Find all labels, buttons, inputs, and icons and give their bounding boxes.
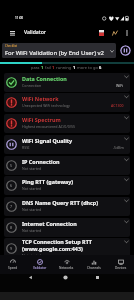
staticText: 6 bbox=[10, 183, 13, 188]
staticText: WiFi bbox=[116, 83, 124, 88]
staticText: TCP Connection Setup RTT bbox=[22, 238, 92, 245]
button[interactable]: 6 bbox=[4, 176, 130, 195]
staticText: WiFi Signal Quality bbox=[22, 137, 73, 144]
button[interactable]: 5 bbox=[4, 156, 130, 175]
staticText: IP Connection bbox=[22, 158, 60, 165]
staticText: Validator bbox=[33, 266, 47, 270]
button[interactable]: Pause validation bbox=[120, 45, 131, 56]
staticText: 1 bbox=[41, 65, 44, 70]
staticText: -5dBm bbox=[113, 145, 124, 150]
button[interactable]: Recent apps bbox=[92, 274, 102, 280]
button[interactable]: Show chart bbox=[108, 26, 121, 39]
staticText: 8 bbox=[10, 225, 13, 230]
button[interactable]: 9 bbox=[4, 238, 130, 259]
staticText: DNS Name Query RTT (dhcp) bbox=[22, 199, 99, 206]
staticText: fail bbox=[44, 65, 52, 70]
staticText: running bbox=[55, 65, 73, 70]
button[interactable]: Networks bbox=[53, 255, 80, 274]
button[interactable]: More options bbox=[121, 27, 133, 39]
button[interactable]: Open navigation menu bbox=[5, 25, 20, 40]
staticText: 1 bbox=[52, 65, 55, 70]
button[interactable]: Home bbox=[60, 274, 70, 280]
button[interactable]: Data Connection bbox=[4, 73, 130, 92]
staticText: Ping RTT (gateway) bbox=[22, 178, 74, 185]
staticText: Data Connection bbox=[22, 75, 67, 82]
staticText: Not started bbox=[22, 207, 42, 212]
button[interactable]: Back bbox=[25, 274, 35, 280]
staticText: 9 bbox=[10, 246, 13, 251]
staticText: Not started bbox=[22, 166, 42, 171]
button[interactable]: Checklist bbox=[2, 43, 116, 58]
staticText: 1 bbox=[73, 65, 76, 70]
staticText: Not started bbox=[22, 253, 42, 258]
button[interactable]: Channels bbox=[80, 255, 107, 274]
staticText: AC1300 bbox=[111, 103, 124, 108]
staticText: For WiFi Validation (by End User) v2 bbox=[5, 49, 104, 57]
staticText: Speed bbox=[8, 266, 18, 270]
button[interactable]: 7 bbox=[4, 197, 130, 216]
staticText: Devices bbox=[115, 266, 127, 270]
staticText: Unexpected WiFi technology bbox=[22, 103, 70, 108]
button[interactable]: 8 bbox=[4, 218, 130, 237]
staticText: WiFi Network bbox=[22, 95, 59, 102]
staticText: Not started bbox=[22, 228, 42, 233]
button[interactable]: Devices bbox=[107, 255, 134, 274]
staticText: RSSI bbox=[22, 145, 30, 150]
button[interactable]: WiFi Spectrum bbox=[4, 114, 130, 133]
button[interactable]: Export PDF report bbox=[95, 26, 108, 39]
staticText: Networks bbox=[59, 266, 74, 270]
staticText: Connection bbox=[22, 83, 42, 88]
staticText: Internet Connection bbox=[22, 220, 77, 227]
button[interactable]: WiFi Signal Quality bbox=[4, 135, 130, 154]
staticText: Highest encountered AC/0/0/SS bbox=[22, 124, 76, 129]
button[interactable]: WiFi Network bbox=[4, 93, 130, 112]
staticText: Channels bbox=[87, 266, 101, 270]
staticText: Checklist bbox=[5, 44, 18, 48]
staticText: Validator bbox=[24, 29, 46, 36]
staticText: (www.google.com:443) bbox=[22, 245, 83, 252]
button[interactable]: Validator bbox=[26, 255, 53, 274]
staticText: pass bbox=[31, 65, 41, 70]
staticText: Not started bbox=[22, 186, 42, 191]
staticText: 11:00 bbox=[15, 16, 24, 20]
staticText: more to go bbox=[76, 65, 99, 70]
staticText: 6 bbox=[99, 65, 102, 70]
staticText: 5 bbox=[10, 163, 13, 168]
staticText: 7 bbox=[10, 204, 13, 209]
button[interactable]: Speed bbox=[0, 255, 26, 274]
staticText: WiFi Spectrum bbox=[22, 116, 61, 123]
